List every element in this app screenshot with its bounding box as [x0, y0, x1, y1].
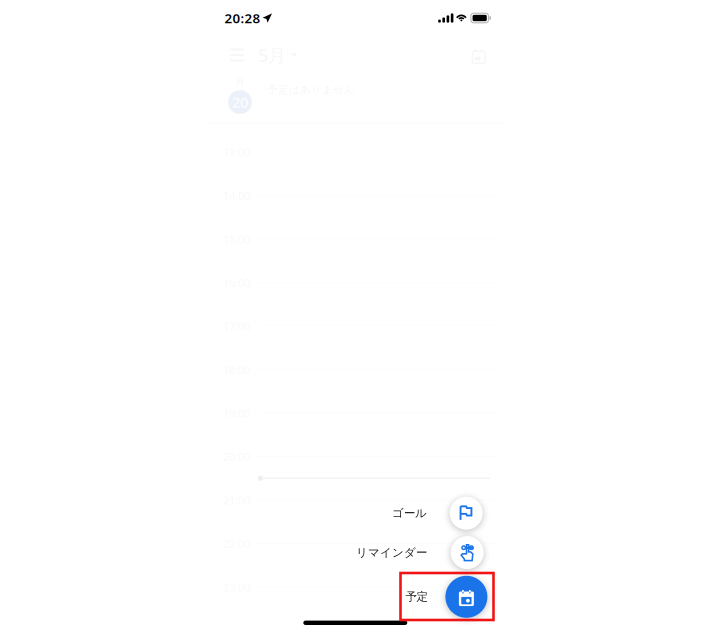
button[interactable]: Jump to today	[472, 48, 485, 62]
button[interactable]: 予定	[267, 571, 487, 623]
staticText: 20:28	[225, 9, 261, 27]
button[interactable]: 5月	[258, 44, 298, 66]
button[interactable]: リマインダー	[267, 531, 484, 574]
staticText: リマインダー	[356, 545, 427, 560]
staticText: 20	[232, 92, 248, 112]
button[interactable]: ゴール	[267, 492, 483, 535]
staticText: ゴール	[392, 506, 427, 520]
staticText: 5月	[258, 43, 286, 67]
button[interactable]: Menu	[225, 44, 249, 66]
staticText: 予定	[405, 590, 427, 604]
